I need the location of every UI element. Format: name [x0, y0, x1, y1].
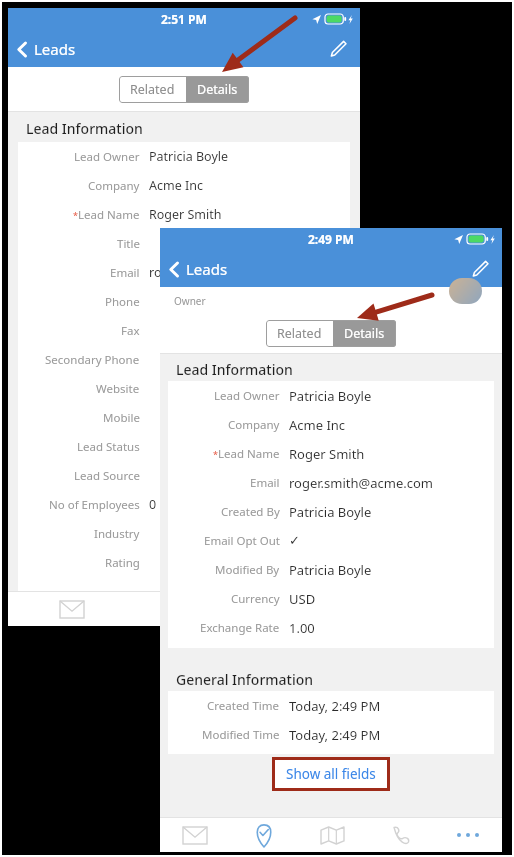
staticText: 2:51 PM [161, 11, 207, 27]
button[interactable]: Lead Owner [168, 381, 494, 410]
button[interactable]: Email Opt Out [168, 526, 494, 555]
button[interactable]: Mobile [18, 403, 350, 432]
staticText: Owner [174, 294, 206, 308]
staticText: Details [197, 81, 238, 98]
button[interactable]: Email [168, 468, 494, 497]
staticText: Currency [231, 591, 280, 607]
staticText: No of Employees [49, 497, 140, 513]
staticText: Lead Name [218, 446, 280, 462]
staticText: Phone [105, 294, 140, 310]
button[interactable]: Created By [168, 497, 494, 526]
staticText: Title [117, 236, 140, 252]
button[interactable]: Website [18, 374, 350, 403]
button[interactable]: Company [18, 171, 350, 200]
staticText: Acme Inc [289, 416, 346, 434]
staticText: rog [149, 264, 170, 281]
staticText: Secondary Phone [45, 352, 140, 368]
button[interactable]: * [18, 200, 350, 229]
staticText: Modified By [215, 562, 280, 578]
button[interactable]: Company [168, 410, 494, 439]
staticText: Today, 2:49 PM [289, 697, 381, 715]
staticText: Lead Source [74, 468, 140, 484]
staticText: Website [96, 381, 140, 397]
staticText: Mobile [103, 410, 140, 426]
staticText: Acme Inc [149, 177, 203, 194]
button[interactable]: Phone [18, 287, 350, 316]
button[interactable]: Owner photo [449, 278, 482, 304]
staticText: Lead Information [176, 360, 293, 379]
staticText: Details [344, 325, 385, 342]
staticText: Patricia Boyle [149, 148, 229, 165]
button[interactable]: Modified Time [168, 720, 494, 749]
button[interactable]: Related [119, 76, 186, 103]
button[interactable]: Exchange Rate [168, 613, 494, 642]
staticText: Fax [121, 323, 140, 339]
button[interactable]: Edit [467, 255, 494, 282]
staticText: Email [250, 475, 280, 491]
staticText: Patricia Boyle [289, 503, 372, 521]
staticText: Industry [94, 526, 140, 542]
staticText: Email [110, 265, 140, 281]
button[interactable]: Secondary Phone [18, 345, 350, 374]
button[interactable]: Email [8, 592, 136, 626]
staticText: Created Time [207, 698, 280, 714]
button[interactable]: Currency [168, 584, 494, 613]
button[interactable]: Fax [18, 316, 350, 345]
staticText: Leads [186, 259, 228, 279]
staticText: 1.00 [289, 619, 315, 637]
button[interactable]: Email [160, 818, 229, 852]
staticText: * [213, 448, 218, 460]
staticText: 2:49 PM [308, 231, 354, 247]
staticText: Roger Smith [289, 445, 365, 463]
button[interactable]: Details [333, 320, 396, 347]
button[interactable]: * [168, 439, 494, 468]
staticText: Rating [105, 555, 140, 571]
staticText: Email Opt Out [204, 533, 280, 549]
staticText: Show all fields [286, 765, 376, 783]
button[interactable]: Related [266, 320, 333, 347]
button[interactable]: Leads [8, 34, 88, 64]
staticText: USD [289, 590, 316, 608]
button[interactable]: Created Time [168, 691, 494, 720]
button[interactable]: Edit [325, 35, 352, 62]
staticText: * [73, 209, 78, 221]
button[interactable]: Leads [160, 254, 240, 284]
staticText: 0 [149, 496, 157, 513]
staticText: Exchange Rate [200, 620, 280, 636]
button[interactable]: Rating [18, 548, 350, 577]
button[interactable]: Email [18, 258, 350, 287]
button[interactable]: Check in [136, 592, 200, 626]
staticText: Created By [221, 504, 280, 520]
staticText: Lead Owner [74, 149, 140, 165]
staticText: General Information [176, 670, 314, 689]
staticText: Today, 2:49 PM [289, 726, 381, 744]
staticText: Related [130, 81, 175, 98]
button[interactable]: Modified By [168, 555, 494, 584]
button[interactable]: Show all fields [275, 760, 387, 788]
staticText: Lead Information [26, 119, 143, 138]
staticText: Modified Time [202, 727, 280, 743]
staticText: ✓ [289, 533, 300, 548]
button[interactable]: Call [366, 818, 434, 852]
button[interactable]: Industry [18, 519, 350, 548]
staticText: Leads [34, 39, 76, 59]
button[interactable]: Lead Status [18, 432, 350, 461]
button[interactable]: Check in [229, 818, 298, 852]
staticText: Lead Status [77, 439, 140, 455]
button[interactable]: Title [18, 229, 350, 258]
button[interactable]: Lead Source [18, 461, 350, 490]
staticText: Lead Name [78, 207, 140, 223]
button[interactable]: Lead Owner [18, 142, 350, 171]
button[interactable]: Map [298, 818, 366, 852]
button[interactable]: Details [186, 76, 249, 103]
staticText: Related [277, 325, 322, 342]
button[interactable]: More [434, 818, 502, 852]
staticText: Patricia Boyle [289, 561, 372, 579]
button[interactable]: No of Employees [18, 490, 350, 519]
staticText: roger.smith@acme.com [289, 474, 433, 492]
staticText: Company [228, 417, 280, 433]
staticText: Company [88, 178, 140, 194]
staticText: Patricia Boyle [289, 387, 372, 405]
staticText: Lead Owner [214, 388, 280, 404]
staticText: Roger Smith [149, 206, 222, 223]
